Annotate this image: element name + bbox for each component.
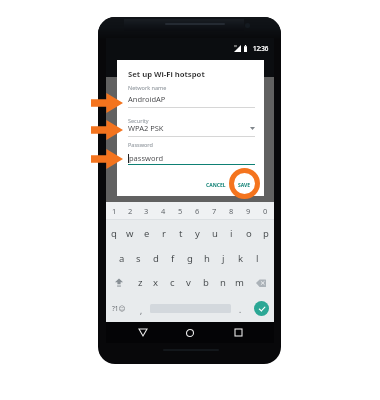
staticText: g <box>187 252 193 265</box>
button[interactable]: 2 <box>122 202 138 220</box>
staticText: t <box>179 227 183 240</box>
button[interactable]: h <box>198 246 215 270</box>
staticText: Security <box>128 117 149 124</box>
staticText: z <box>138 276 143 289</box>
button[interactable]: b <box>197 270 214 295</box>
button[interactable]: n <box>214 270 231 295</box>
staticText: s <box>136 252 141 265</box>
button[interactable]: g <box>181 246 198 270</box>
button[interactable]: 4 <box>155 202 172 220</box>
staticText: ?1☺ <box>112 304 126 313</box>
button[interactable]: 5 <box>172 202 189 220</box>
staticText: Set up Wi-Fi hotspot <box>128 69 205 79</box>
button[interactable]: Backspace <box>248 270 274 295</box>
button[interactable]: , <box>132 295 150 322</box>
staticText: r <box>162 227 166 240</box>
staticText: w <box>126 227 134 240</box>
staticText: 1 <box>112 206 117 216</box>
staticText: password <box>129 153 163 163</box>
staticText: c <box>170 276 175 289</box>
staticText: 6 <box>195 206 200 216</box>
button[interactable]: SAVE <box>236 179 253 192</box>
button[interactable]: c <box>164 270 180 295</box>
button[interactable]: Home <box>179 322 201 343</box>
button[interactable]: 0 <box>257 202 274 220</box>
staticText: 12:36 <box>253 44 269 53</box>
button[interactable]: Recents <box>227 322 249 343</box>
button[interactable]: x <box>148 270 164 295</box>
staticText: 3 <box>144 206 149 216</box>
staticText: 5 <box>178 206 183 216</box>
button[interactable]: q <box>106 220 122 246</box>
staticText: b <box>203 276 209 289</box>
button[interactable]: o <box>240 220 257 246</box>
staticText: AndroidAP <box>128 94 166 104</box>
button[interactable]: 8 <box>223 202 240 220</box>
button[interactable]: e <box>138 220 155 246</box>
staticText: x <box>153 276 159 289</box>
button[interactable]: k <box>232 246 249 270</box>
staticText: , <box>140 305 143 316</box>
button[interactable]: Enter <box>254 301 269 316</box>
staticText: Password <box>128 141 153 148</box>
staticText: j <box>222 252 225 265</box>
button[interactable]: . <box>231 295 249 322</box>
staticText: p <box>263 227 269 240</box>
staticText: f <box>171 252 175 265</box>
button[interactable]: Shift <box>106 270 132 295</box>
button[interactable]: y <box>189 220 206 246</box>
staticText: e <box>144 227 150 240</box>
button[interactable]: f <box>164 246 181 270</box>
button[interactable]: w <box>122 220 138 246</box>
staticText: 4 <box>161 206 166 216</box>
staticText: . <box>239 304 242 315</box>
staticText: q <box>111 227 117 240</box>
button[interactable]: Back <box>132 322 154 343</box>
button[interactable]: a <box>114 246 130 270</box>
staticText: m <box>235 276 244 289</box>
staticText: 9 <box>246 206 251 216</box>
staticText: Network name <box>128 84 167 91</box>
staticText: a <box>119 252 125 265</box>
staticText: 0 <box>263 206 268 216</box>
staticText: l <box>256 252 259 265</box>
staticText: CANCEL <box>206 182 226 189</box>
button[interactable]: 3 <box>138 202 155 220</box>
button[interactable]: d <box>147 246 164 270</box>
button[interactable]: CANCEL <box>204 179 228 192</box>
button[interactable]: 7 <box>206 202 223 220</box>
staticText: k <box>238 252 244 265</box>
button[interactable]: t <box>172 220 189 246</box>
button[interactable]: p <box>257 220 274 246</box>
button[interactable]: 9 <box>240 202 257 220</box>
button[interactable]: Symbols <box>106 295 132 322</box>
button[interactable]: i <box>223 220 240 246</box>
button[interactable]: v <box>180 270 197 295</box>
staticText: WPA2 PSK <box>128 123 164 133</box>
staticText: d <box>153 252 159 265</box>
staticText: o <box>246 227 252 240</box>
button[interactable]: z <box>132 270 148 295</box>
button[interactable]: 6 <box>189 202 206 220</box>
staticText: n <box>220 276 226 289</box>
button[interactable]: l <box>249 246 266 270</box>
button[interactable]: r <box>155 220 172 246</box>
staticText: SAVE <box>238 182 251 189</box>
staticText: 7 <box>212 206 217 216</box>
staticText: h <box>204 252 210 265</box>
staticText: 8 <box>229 206 234 216</box>
button[interactable]: s <box>130 246 147 270</box>
button[interactable]: 1 <box>106 202 122 220</box>
button[interactable]: m <box>231 270 248 295</box>
button[interactable]: u <box>206 220 223 246</box>
staticText: i <box>230 227 233 240</box>
staticText: v <box>186 276 191 289</box>
staticText: y <box>195 227 200 240</box>
staticText: u <box>212 227 218 240</box>
button[interactable]: j <box>215 246 232 270</box>
staticText: 2 <box>128 206 133 216</box>
